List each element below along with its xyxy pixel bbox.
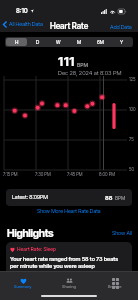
button[interactable]: Browse tab	[92, 272, 138, 293]
staticText: 6M	[97, 39, 104, 45]
staticText: Sharing	[62, 284, 76, 289]
staticText: Your heart rate ranged from 58 to 73 bea…	[10, 255, 127, 269]
button[interactable]: Y	[111, 38, 132, 46]
button[interactable]: 6M	[90, 38, 111, 46]
button[interactable]: M	[69, 38, 90, 46]
staticText: W	[56, 39, 61, 45]
staticText: 100	[129, 107, 136, 112]
staticText: H	[15, 39, 19, 45]
staticText: Summary	[14, 284, 32, 289]
staticText: 111	[58, 54, 75, 69]
button[interactable]: Add Data	[104, 25, 138, 32]
button[interactable]: H	[6, 38, 27, 46]
staticText: Add Data	[110, 24, 132, 31]
staticText: Highlights	[7, 227, 54, 239]
button[interactable]: D	[27, 38, 48, 46]
staticText: Y	[120, 39, 124, 45]
staticText: Heart Rate	[50, 21, 89, 31]
staticText: Show More Heart Rate Data	[37, 208, 101, 214]
button[interactable]: Latest: 8:09PM	[6, 189, 132, 206]
staticText: 8:00 PM	[99, 172, 115, 177]
staticText: Dec 28, 2024 at 8:03 PM	[58, 69, 122, 76]
button[interactable]: W	[48, 38, 69, 46]
button[interactable]: Show More Heart Rate Data	[33, 207, 105, 215]
button[interactable]: All Health Data	[0, 19, 47, 32]
staticText: 50	[129, 167, 134, 172]
staticText: M	[77, 39, 82, 45]
staticText: 75	[129, 137, 134, 142]
staticText: 125	[129, 77, 136, 82]
staticText: Browse	[108, 284, 122, 289]
button[interactable]: Sharing tab	[46, 272, 92, 293]
staticText: Heart Rate: Sleep	[17, 246, 57, 252]
button[interactable]: Heart Rate: Sleep	[6, 242, 132, 282]
staticText: BPM	[77, 62, 89, 68]
staticText: 8:10	[16, 7, 28, 15]
staticText: D	[36, 39, 40, 45]
staticText: 7:15 PM	[3, 172, 18, 177]
staticText: Show All	[112, 230, 132, 237]
staticText: 88	[105, 194, 113, 201]
staticText: BPM	[115, 195, 126, 201]
staticText: All Health Data	[9, 21, 43, 28]
staticText: 7:30 PM	[35, 172, 51, 177]
button[interactable]: Show All	[106, 230, 138, 237]
staticText: Latest: 8:09PM	[12, 194, 48, 201]
button[interactable]: Summary tab	[0, 272, 46, 293]
staticText: 7:45 PM	[67, 172, 83, 177]
